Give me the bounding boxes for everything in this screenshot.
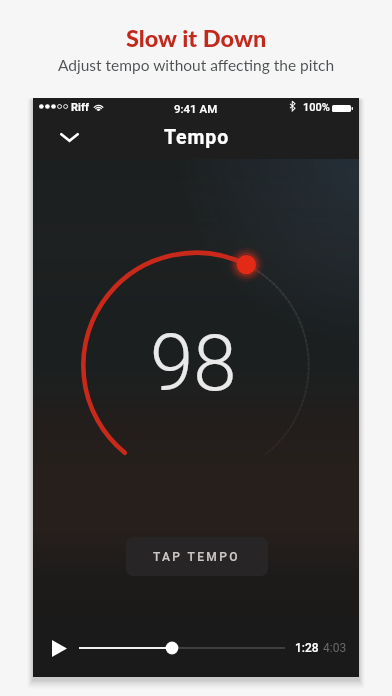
- staticText: Riff: [71, 101, 89, 114]
- staticText: 100%: [303, 101, 330, 114]
- staticText: Adjust tempo without affecting the pitch: [58, 56, 335, 75]
- button[interactable]: Collapse: [51, 119, 87, 155]
- staticText: Tempo: [164, 126, 230, 149]
- staticText: 98: [150, 318, 237, 409]
- staticText: 4:03: [323, 641, 347, 655]
- staticText: TAP TEMPO: [153, 550, 241, 564]
- staticText: 9:41 AM: [174, 102, 218, 115]
- button[interactable]: TAP TEMPO: [126, 537, 268, 576]
- staticText: 1:28: [295, 641, 319, 655]
- staticText: Slow it Down: [126, 24, 267, 52]
- button[interactable]: Play: [40, 629, 78, 667]
